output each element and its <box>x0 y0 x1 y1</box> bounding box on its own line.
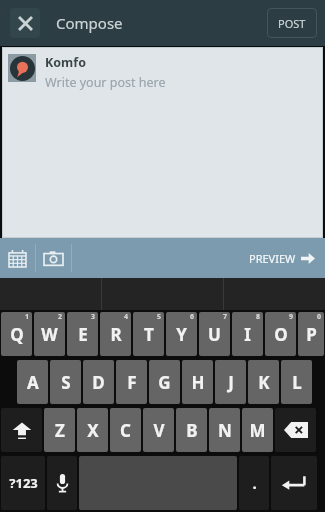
button[interactable]: P <box>298 312 324 356</box>
button[interactable]: ?123 <box>1 456 45 510</box>
button[interactable]: Voice input <box>47 456 77 510</box>
button[interactable]: K <box>248 360 279 404</box>
button[interactable]: J <box>215 360 246 404</box>
staticText: I <box>244 323 251 346</box>
button[interactable]: A <box>17 360 48 404</box>
staticText: B <box>186 419 198 442</box>
button[interactable]: Komfo <box>2 47 323 238</box>
staticText: Y <box>176 323 187 346</box>
staticText: 2 <box>58 312 63 322</box>
button[interactable]: Close <box>10 8 40 38</box>
staticText: 4 <box>124 312 129 322</box>
staticText: Write your post here <box>45 74 166 91</box>
staticText: J <box>228 371 234 394</box>
staticText: ?123 <box>9 474 38 492</box>
staticText: 7 <box>223 312 228 322</box>
staticText: A <box>27 371 39 394</box>
button[interactable]: B <box>176 408 207 452</box>
staticText: 6 <box>190 312 195 322</box>
staticText: G <box>158 371 171 394</box>
staticText: P <box>306 323 317 346</box>
staticText: . <box>252 473 257 493</box>
button[interactable]: G <box>149 360 180 404</box>
button[interactable]: POST <box>267 8 317 38</box>
staticText: Q <box>10 323 24 346</box>
staticText: K <box>258 371 270 394</box>
button[interactable]: X <box>77 408 108 452</box>
button[interactable]: Q <box>1 312 32 356</box>
button[interactable]: F <box>116 360 147 404</box>
button[interactable]: Backspace <box>275 408 316 452</box>
button[interactable]: T <box>133 312 164 356</box>
staticText: 8 <box>256 312 261 322</box>
button[interactable]: Add photo <box>36 238 71 278</box>
button[interactable]: W <box>34 312 65 356</box>
button[interactable]: D <box>83 360 114 404</box>
button[interactable]: Shift <box>1 408 42 452</box>
button[interactable]: E <box>67 312 98 356</box>
staticText: S <box>61 371 71 394</box>
button[interactable]: Schedule <box>0 238 35 278</box>
staticText: V <box>153 419 165 442</box>
button[interactable]: Y <box>166 312 197 356</box>
staticText: Z <box>55 419 65 442</box>
staticText: PREVIEW <box>249 251 296 266</box>
button[interactable]: V <box>143 408 174 452</box>
button[interactable]: R <box>100 312 131 356</box>
button[interactable]: N <box>209 408 240 452</box>
button[interactable]: C <box>110 408 141 452</box>
button[interactable]: I <box>232 312 263 356</box>
button[interactable]: H <box>182 360 213 404</box>
staticText: E <box>78 323 88 346</box>
staticText: N <box>218 419 232 442</box>
button[interactable]: Z <box>44 408 75 452</box>
staticText: Compose <box>56 13 123 33</box>
button[interactable]: L <box>281 360 312 404</box>
staticText: H <box>191 371 205 394</box>
button[interactable]: S <box>50 360 81 404</box>
staticText: 9 <box>289 312 294 322</box>
staticText: M <box>249 419 266 442</box>
staticText: T <box>144 323 154 346</box>
staticText: O <box>274 323 288 346</box>
button[interactable]: U <box>199 312 230 356</box>
staticText: L <box>292 371 302 394</box>
staticText: U <box>208 323 221 346</box>
button[interactable]: Enter <box>271 456 317 510</box>
staticText: R <box>110 323 122 346</box>
button[interactable]: . <box>239 456 269 510</box>
staticText: X <box>87 419 99 442</box>
staticText: 1 <box>25 312 30 322</box>
staticText: POST <box>278 16 306 31</box>
button[interactable]: PREVIEW <box>249 251 315 266</box>
staticText: 5 <box>157 312 162 322</box>
staticText: D <box>92 371 105 394</box>
staticText: Komfo <box>45 54 86 71</box>
staticText: F <box>127 371 137 394</box>
staticText: 0 <box>317 312 322 322</box>
button[interactable]: M <box>242 408 273 452</box>
staticText: W <box>41 323 58 346</box>
staticText: C <box>120 419 131 442</box>
button[interactable]: O <box>265 312 296 356</box>
staticText: 3 <box>91 312 96 322</box>
